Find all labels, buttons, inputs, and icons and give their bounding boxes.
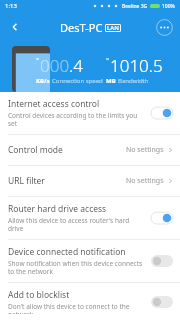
staticText: Control devices according to the limits … [8, 111, 145, 128]
button[interactable]: Router hard drive access [0, 197, 180, 239]
staticText: Allow this device to access router's har… [8, 216, 145, 233]
staticText: Control mode [8, 144, 126, 156]
button[interactable]: Toggle off [151, 296, 173, 308]
staticText: No settings [126, 176, 164, 186]
staticText: Don't allow this device to connect to th… [8, 302, 145, 314]
staticText: Bandwidth [118, 77, 149, 85]
staticText: 1010.5 [110, 54, 163, 77]
staticText: MB [106, 77, 116, 85]
staticText: Connection speed [52, 77, 103, 85]
staticText: Internet access control [8, 98, 100, 110]
staticText: 100% [162, 3, 175, 10]
button[interactable]: Back [0, 12, 30, 42]
staticText: LAN [107, 24, 119, 32]
staticText: URL filter [8, 175, 126, 187]
button[interactable]: More options [154, 17, 174, 37]
staticText: DesT-PC [60, 20, 103, 35]
staticText: Add to blocklist [8, 289, 70, 301]
button[interactable]: Internet access control [0, 92, 180, 134]
staticText: 000.4 [40, 54, 83, 77]
staticText: Show notification when this device conne… [8, 259, 145, 276]
staticText: Device connected notification [8, 246, 126, 258]
staticText: KB/s [36, 77, 50, 85]
button[interactable]: Toggle on [151, 107, 173, 119]
staticText: Router hard drive access [8, 203, 107, 215]
staticText: 1:13 [5, 2, 17, 10]
button[interactable]: Toggle off [151, 255, 173, 267]
button[interactable]: URL filter [0, 166, 180, 196]
button[interactable]: Device connected notification [0, 240, 180, 282]
staticText: Beeline 3G [122, 3, 148, 10]
button[interactable]: Control mode [0, 135, 180, 165]
staticText: No settings [126, 145, 164, 155]
button[interactable]: Toggle on [151, 212, 173, 224]
button[interactable]: Add to blocklist [0, 283, 180, 320]
